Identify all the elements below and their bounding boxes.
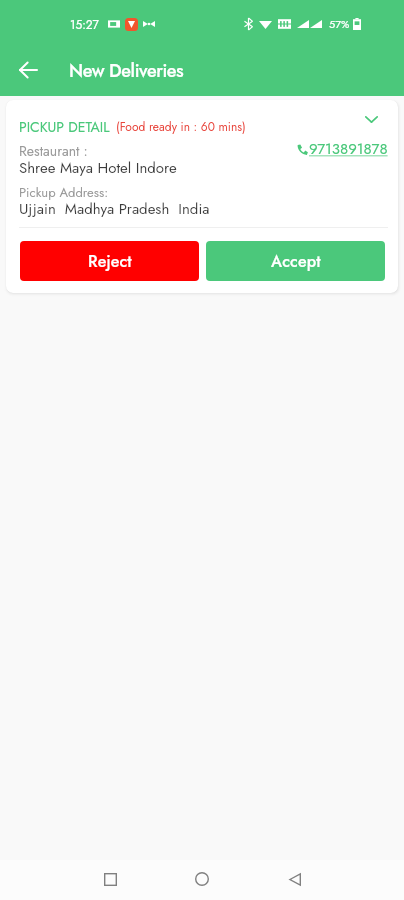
- button[interactable]: Recent apps: [88, 859, 132, 899]
- staticText: 9713891878: [309, 138, 388, 160]
- staticText: 57%: [329, 16, 350, 32]
- button[interactable]: Collapse details: [360, 108, 382, 130]
- button[interactable]: Back: [10, 52, 46, 88]
- staticText: PICKUP DETAIL: [19, 117, 110, 137]
- button[interactable]: Home: [180, 859, 224, 899]
- button[interactable]: Reject: [20, 241, 199, 281]
- staticText: Reject: [88, 250, 132, 273]
- staticText: Ujjain Madhya Pradesh India: [19, 198, 210, 220]
- button[interactable]: Accept: [206, 241, 385, 281]
- staticText: New Deliveries: [69, 58, 184, 84]
- staticText: Shree Maya Hotel Indore: [19, 157, 177, 179]
- staticText: Restaurant :: [19, 141, 88, 161]
- staticText: (Food ready in : 60 mins): [116, 118, 246, 135]
- staticText: 15:27: [70, 16, 99, 33]
- button[interactable]: 9713891878: [297, 138, 388, 160]
- staticText: Pickup Address:: [19, 183, 109, 202]
- button[interactable]: Back: [273, 859, 317, 899]
- staticText: Accept: [271, 250, 321, 273]
